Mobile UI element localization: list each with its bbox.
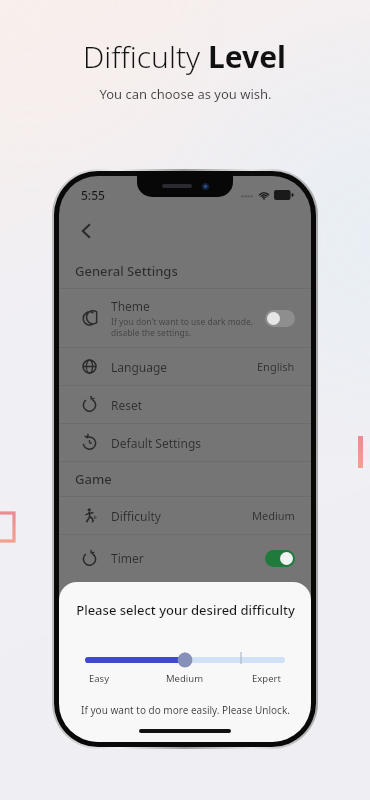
button[interactable]: Timer <box>59 535 311 581</box>
staticText: Difficulty <box>83 36 208 77</box>
staticText: Medium <box>166 672 204 685</box>
staticText: General Settings <box>75 262 178 280</box>
button[interactable]: Language <box>59 348 311 385</box>
button[interactable]: Theme toggle <box>265 310 295 327</box>
staticText: Please select your desired difficulty <box>76 601 295 619</box>
staticText: Medium <box>252 508 295 523</box>
button[interactable]: Difficulty slider <box>85 651 285 669</box>
staticText: English <box>257 359 295 374</box>
staticText: You can choose as you wish. <box>99 85 272 103</box>
button[interactable]: Reset <box>59 386 311 423</box>
button[interactable]: Default Settings <box>59 424 311 461</box>
staticText: Theme <box>111 298 150 314</box>
staticText: If you want to do more easily. Please Un… <box>81 703 290 717</box>
staticText: Timer <box>111 550 265 566</box>
button[interactable]: Difficulty <box>59 497 311 534</box>
staticText: Default Settings <box>111 435 295 451</box>
button[interactable]: Theme <box>59 289 311 347</box>
staticText: Reset <box>111 397 295 413</box>
staticText: 5:55 <box>81 187 105 203</box>
staticText: Language <box>111 359 257 375</box>
staticText: Level <box>208 36 287 77</box>
staticText: Easy <box>89 672 110 685</box>
staticText: Game <box>75 470 112 488</box>
staticText: Difficulty <box>111 508 252 524</box>
button[interactable]: Back <box>72 216 102 246</box>
staticText: If you don't want to use dark mode, disa… <box>111 316 259 338</box>
staticText: Expert <box>252 672 281 685</box>
